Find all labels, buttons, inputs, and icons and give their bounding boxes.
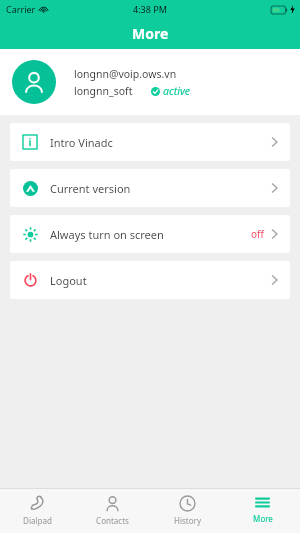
other: More <box>254 495 271 510</box>
staticText: Logout <box>50 273 87 288</box>
staticText: History <box>174 515 201 526</box>
other: Dialpad <box>29 495 46 512</box>
button[interactable]: Logout <box>10 261 290 299</box>
other: Contacts <box>104 495 121 512</box>
staticText: Always turn on screen <box>50 227 164 242</box>
button[interactable]: More <box>225 489 300 533</box>
staticText: Carrier <box>6 3 36 15</box>
button[interactable]: Contacts <box>75 489 150 533</box>
button[interactable]: Intro Vinadc <box>10 123 290 161</box>
staticText: off <box>251 227 264 241</box>
staticText: Intro Vinadc <box>50 135 113 150</box>
staticText: longnn@voip.ows.vn <box>74 67 177 81</box>
other: History <box>179 495 196 512</box>
staticText: More <box>132 24 169 43</box>
button[interactable]: Dialpad <box>0 489 75 533</box>
staticText: 4:38 PM <box>133 3 167 15</box>
staticText: More <box>253 513 273 524</box>
button[interactable]: Always turn on screen <box>10 215 290 253</box>
staticText: Current version <box>50 181 131 196</box>
staticText: longnn_soft <box>74 84 133 98</box>
button[interactable]: Current version <box>10 169 290 207</box>
button[interactable]: History <box>150 489 225 533</box>
staticText: Dialpad <box>23 515 52 526</box>
button[interactable]: longnn@voip.ows.vn <box>0 49 300 115</box>
staticText: active <box>163 84 191 98</box>
staticText: Contacts <box>96 515 129 526</box>
